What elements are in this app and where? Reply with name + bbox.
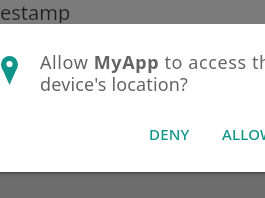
staticText: DENY	[149, 124, 190, 144]
button[interactable]: DENY	[137, 112, 202, 156]
staticText: ALLOW	[222, 124, 265, 144]
staticText: device's location?	[40, 72, 189, 97]
button[interactable]: ALLOW	[210, 112, 265, 156]
staticText: Allow MyApp to access this	[40, 50, 265, 75]
staticText: estamp	[0, 0, 71, 23]
